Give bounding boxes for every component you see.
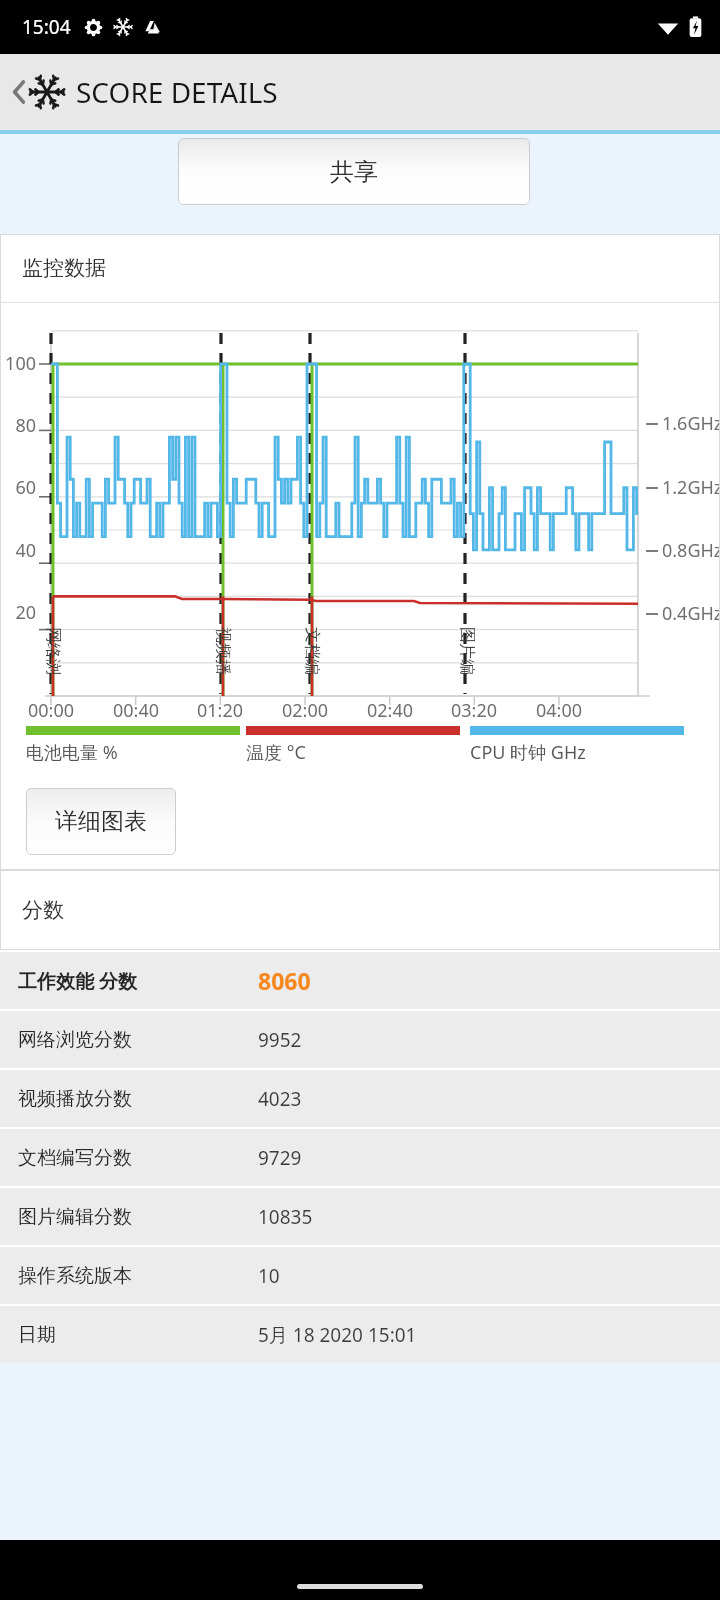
staticText: 4023 [258, 1086, 302, 1112]
staticText: 温度 °C [246, 740, 306, 765]
staticText: 共享 [330, 157, 378, 187]
staticText: 文档编写 [302, 627, 322, 675]
staticText: 8060 [258, 965, 311, 996]
staticText: 图片编辑 [457, 627, 477, 675]
button[interactable]: 操作系统版本 [0, 1247, 720, 1304]
button[interactable]: 图片编辑分数 [0, 1188, 720, 1245]
staticText: SCORE DETAILS [76, 73, 278, 111]
button[interactable]: Back to score details [0, 54, 720, 130]
staticText: 9952 [258, 1027, 302, 1053]
staticText: 20 [15, 600, 36, 625]
staticText: 分数 [22, 897, 64, 923]
staticText: 10 [258, 1263, 280, 1289]
staticText: 00:40 [113, 698, 160, 723]
staticText: 10835 [258, 1204, 313, 1230]
staticText: 视频播放 [213, 627, 233, 675]
staticText: 02:00 [282, 698, 329, 723]
staticText: 文档编写分数 [18, 1146, 258, 1170]
staticText: 0.8GHz [662, 538, 720, 563]
staticText: 80 [15, 413, 36, 438]
staticText: 网络浏览分数 [18, 1028, 258, 1052]
staticText: 1.2GHz [662, 475, 720, 500]
staticText: 0.4GHz [662, 601, 720, 626]
button[interactable]: 文档编写分数 [0, 1129, 720, 1186]
button[interactable]: 工作效能 分数 [0, 952, 720, 1009]
staticText: 01:20 [197, 698, 244, 723]
staticText: 00:00 [28, 698, 75, 723]
staticText: 操作系统版本 [18, 1264, 258, 1288]
staticText: 40 [15, 538, 36, 563]
button[interactable]: 日期 [0, 1306, 720, 1363]
staticText: 视频播放分数 [18, 1087, 258, 1111]
staticText: 03:20 [451, 698, 498, 723]
staticText: 15:04 [22, 14, 71, 40]
button[interactable]: 详细图表 [26, 788, 176, 855]
staticText: 04:00 [536, 698, 583, 723]
staticText: 图片编辑分数 [18, 1205, 258, 1229]
staticText: 5月 18 2020 15:01 [258, 1322, 417, 1348]
staticText: 1.6GHz [662, 411, 720, 436]
staticText: 9729 [258, 1145, 302, 1171]
staticText: 60 [15, 475, 36, 500]
staticText: 02:40 [367, 698, 414, 723]
staticText: 监控数据 [22, 255, 106, 281]
staticText: 工作效能 分数 [18, 968, 258, 994]
staticText: CPU 时钟 GHz [470, 740, 586, 765]
button[interactable]: 共享 [178, 138, 530, 205]
staticText: 详细图表 [55, 807, 147, 836]
staticText: 100 [5, 351, 36, 376]
button[interactable]: 网络浏览分数 [0, 1011, 720, 1068]
staticText: 日期 [18, 1323, 258, 1347]
staticText: 网络浏览 [43, 627, 63, 675]
button[interactable]: 视频播放分数 [0, 1070, 720, 1127]
staticText: 电池电量 % [26, 740, 118, 765]
